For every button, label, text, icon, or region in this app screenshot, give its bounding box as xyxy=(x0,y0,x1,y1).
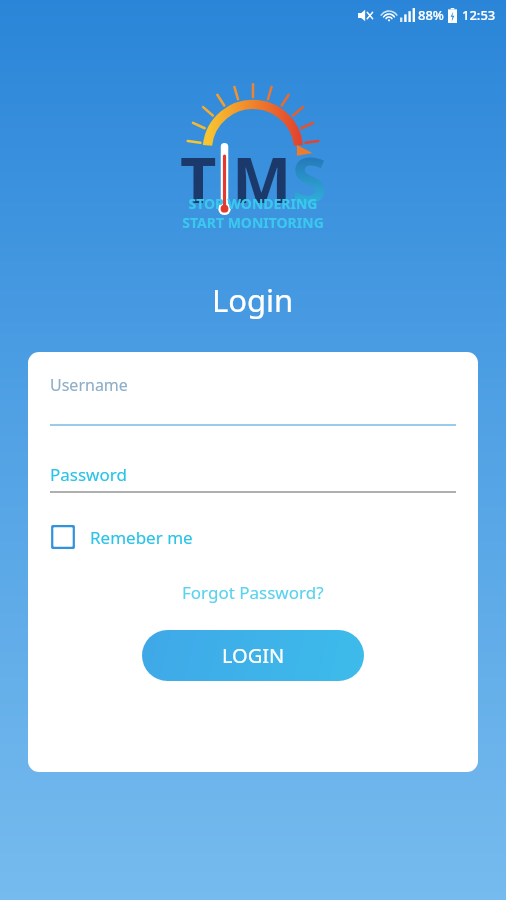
staticText: Username xyxy=(50,374,128,396)
button[interactable]: Password xyxy=(50,463,456,493)
staticText: 12:53 xyxy=(462,6,496,24)
staticText: START MONITORING xyxy=(182,213,324,232)
button[interactable]: Username xyxy=(50,374,456,426)
button[interactable]: Remeber me xyxy=(50,524,193,550)
staticText: T xyxy=(180,136,217,222)
staticText: 88% xyxy=(418,6,444,24)
staticText: LOGIN xyxy=(222,642,285,669)
staticText: M xyxy=(232,136,292,222)
staticText: Forgot Password? xyxy=(182,581,324,604)
button[interactable]: LOGIN xyxy=(142,630,364,681)
button[interactable]: Forgot Password? xyxy=(176,578,330,607)
staticText: STOP WONDERING xyxy=(188,194,318,213)
staticText: Login xyxy=(212,279,294,321)
staticText: Remeber me xyxy=(90,526,193,549)
staticText: Password xyxy=(50,463,127,486)
staticText: S xyxy=(292,136,327,222)
